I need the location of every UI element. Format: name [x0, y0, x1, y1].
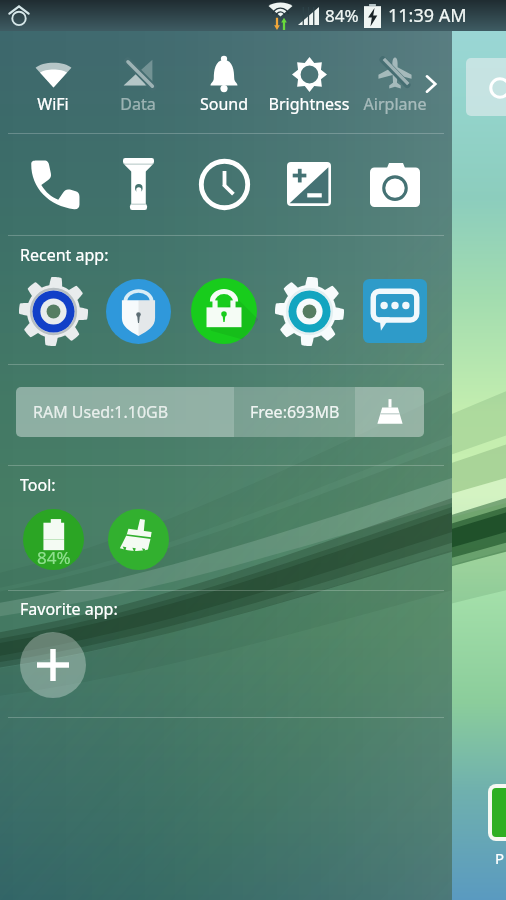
button[interactable]: Airplane: [353, 38, 437, 120]
button[interactable]: Add favorite app: [11, 623, 95, 707]
staticText: 84%: [37, 546, 71, 569]
button[interactable]: Messages: [353, 269, 437, 353]
button[interactable]: Camera: [353, 136, 437, 232]
button[interactable]: Lock: [182, 269, 266, 353]
staticText: Favorite app:: [20, 598, 118, 620]
staticText: Data: [96, 93, 180, 115]
staticText: Tool:: [20, 474, 56, 496]
staticText: Recent app:: [20, 244, 109, 266]
button[interactable]: More quick settings: [415, 68, 447, 100]
staticText: Free:693MB: [250, 401, 340, 423]
button[interactable]: Free:693MB: [234, 387, 355, 437]
staticText: RAM Used:1.10GB: [33, 401, 169, 423]
button[interactable]: Settings: [267, 269, 351, 353]
button[interactable]: Clean: [96, 497, 180, 581]
button[interactable]: Clean memory: [355, 387, 424, 437]
staticText: 11:39 AM: [388, 3, 467, 28]
staticText: Brightness: [267, 93, 351, 115]
button[interactable]: Gear settings: [11, 269, 95, 353]
button[interactable]: Exposure: [267, 136, 351, 232]
staticText: Airplane: [353, 93, 437, 115]
button[interactable]: RAM Used:1.10GB: [16, 387, 234, 437]
staticText: P: [495, 848, 505, 868]
staticText: 84%: [325, 4, 359, 27]
button[interactable]: WiFi: [11, 38, 95, 120]
button[interactable]: Clock: [182, 136, 266, 232]
button[interactable]: Data: [96, 38, 180, 120]
button[interactable]: Sound: [182, 38, 266, 120]
staticText: Sound: [182, 93, 266, 115]
staticText: WiFi: [11, 93, 95, 115]
button[interactable]: Phone: [11, 136, 95, 232]
button[interactable]: Battery 84%: [11, 497, 95, 581]
button[interactable]: Flashlight: [96, 136, 180, 232]
button[interactable]: App lock: [96, 269, 180, 353]
button[interactable]: Brightness: [267, 38, 351, 120]
